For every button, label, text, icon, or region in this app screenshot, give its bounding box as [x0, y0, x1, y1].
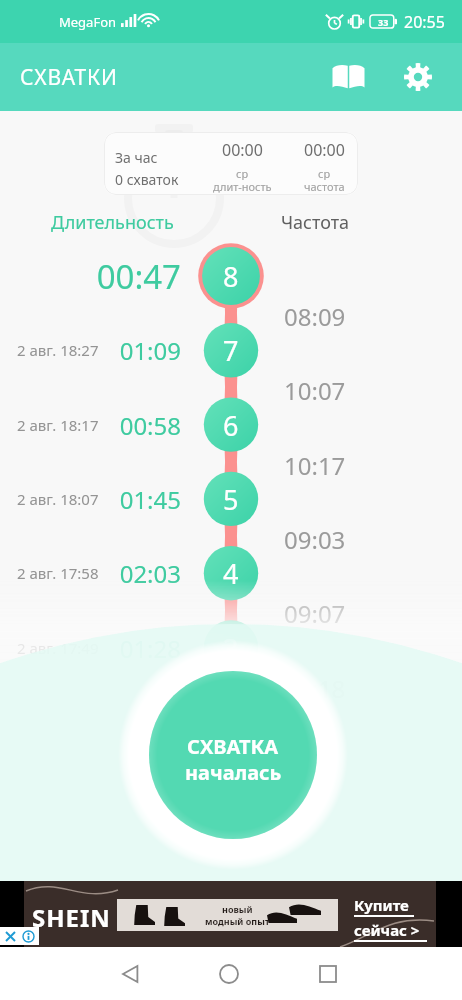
- staticText: 8: [223, 258, 239, 295]
- staticText: 0 схваток: [115, 170, 179, 189]
- staticText: 09:07: [284, 597, 346, 630]
- staticText: 2 авг. 17:49: [17, 638, 99, 658]
- button[interactable]: Back: [107, 947, 155, 1000]
- staticText: 00:47: [96, 254, 181, 299]
- button[interactable]: За час: [104, 132, 358, 195]
- staticText: Купите: [354, 895, 409, 915]
- staticText: MegaFon: [59, 13, 117, 31]
- staticText: 20:55: [404, 11, 445, 33]
- staticText: новый: [222, 903, 253, 915]
- staticText: 00:58: [119, 409, 181, 442]
- staticText: 10:17: [284, 449, 346, 482]
- staticText: 7: [223, 332, 239, 369]
- staticText: 5: [223, 481, 239, 518]
- button[interactable]: Start contraction: [149, 671, 317, 839]
- staticText: 09:18: [284, 672, 346, 705]
- staticText: началась: [185, 759, 282, 781]
- button[interactable]: Settings: [394, 53, 442, 101]
- staticText: 00:00: [222, 139, 263, 159]
- staticText: Частота: [281, 210, 350, 235]
- button[interactable]: SHEIN: [0, 881, 462, 947]
- staticText: 6: [223, 407, 239, 444]
- staticText: 00:00: [304, 139, 345, 159]
- staticText: СХВАТКИ: [20, 63, 118, 92]
- staticText: 2 авг. 18:27: [17, 340, 99, 360]
- staticText: 01:09: [119, 334, 181, 367]
- staticText: 33: [378, 16, 389, 28]
- staticText: 08:09: [284, 300, 346, 333]
- staticText: СХВАТКА: [187, 733, 279, 755]
- staticText: частота: [304, 179, 345, 193]
- staticText: 4: [223, 555, 239, 592]
- staticText: сейчас >: [354, 920, 420, 940]
- staticText: 09:03: [284, 523, 346, 556]
- staticText: ср: [318, 166, 331, 180]
- staticText: 02:03: [119, 557, 181, 590]
- button[interactable]: Instructions: [324, 53, 372, 101]
- staticText: ср: [236, 166, 249, 180]
- staticText: длит-ность: [213, 179, 272, 193]
- button[interactable]: Home: [205, 947, 253, 1000]
- staticText: Длительность: [51, 210, 174, 235]
- staticText: 3: [223, 630, 239, 667]
- staticText: 2 авг. 18:17: [17, 415, 99, 435]
- staticText: 2 авг. 18:07: [17, 489, 99, 509]
- staticText: SHEIN: [32, 901, 111, 934]
- button[interactable]: Recent apps: [304, 947, 352, 1000]
- staticText: За час: [115, 148, 158, 167]
- staticText: 2 авг. 17:58: [17, 563, 99, 583]
- staticText: 10:07: [284, 374, 346, 407]
- staticText: 01:45: [119, 483, 181, 516]
- button[interactable]: Close ad: [0, 927, 39, 945]
- staticText: 01:28: [119, 632, 181, 665]
- staticText: модный опыт: [205, 915, 270, 927]
